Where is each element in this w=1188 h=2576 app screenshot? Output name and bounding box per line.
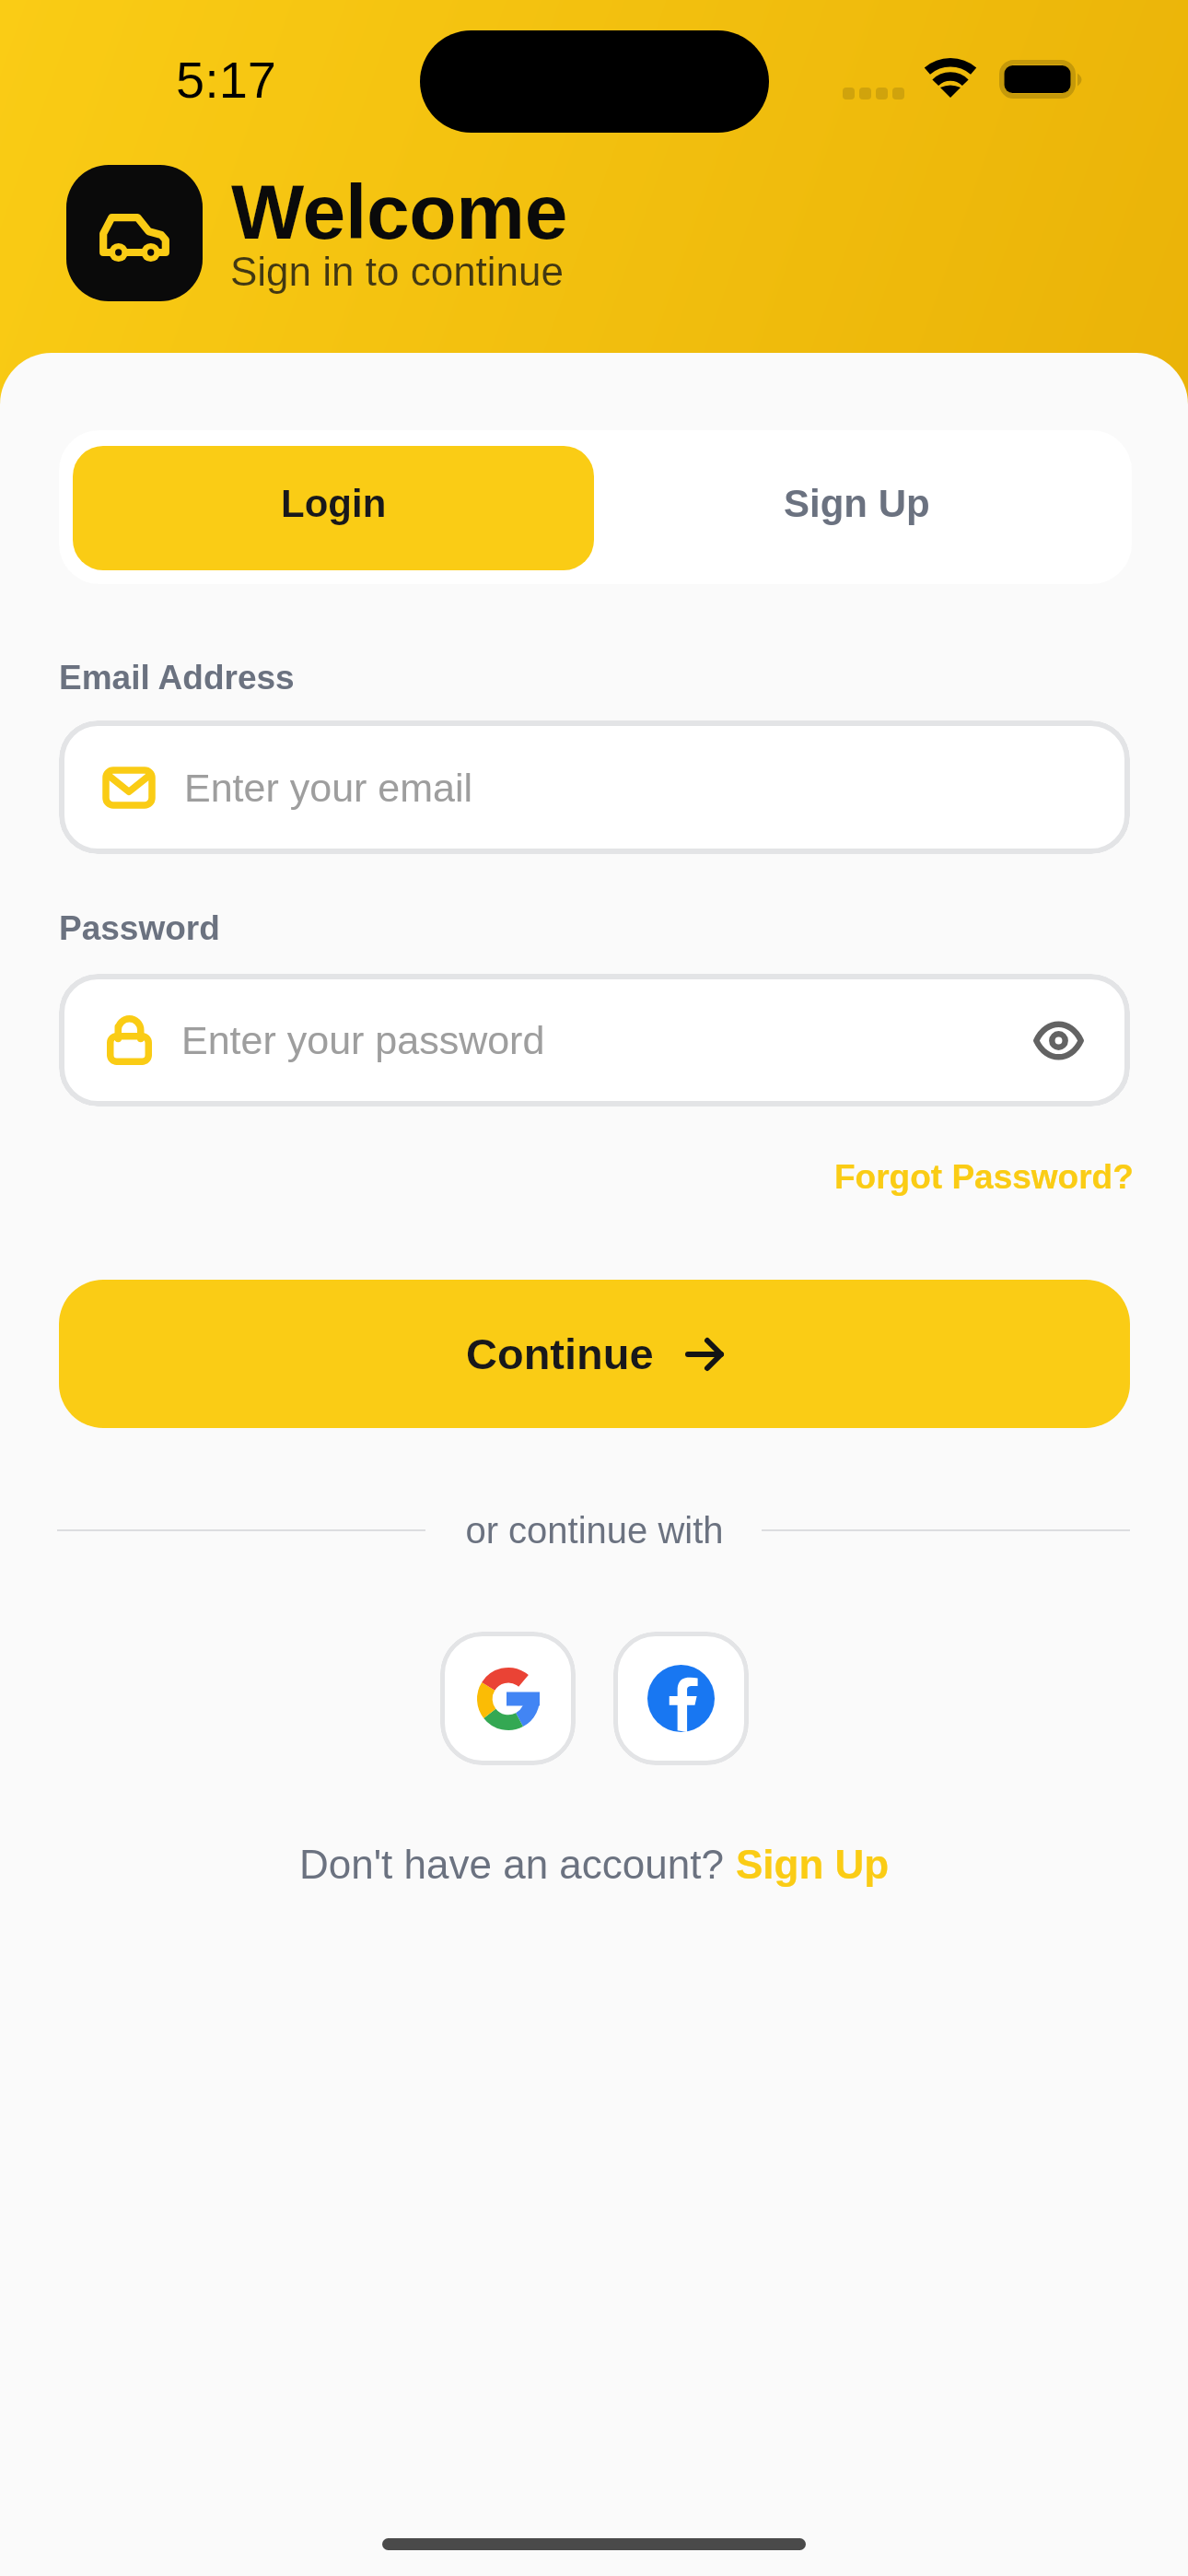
staticText: 5:17: [176, 51, 276, 109]
button[interactable]: Sign Up: [596, 446, 1117, 570]
staticText: Welcome: [231, 169, 568, 255]
button[interactable]: Show password: [1029, 1011, 1088, 1070]
button[interactable]: Forgot Password?: [834, 1158, 1134, 1196]
staticText: or continue with: [465, 1510, 724, 1551]
staticText: Enter your email: [184, 766, 473, 810]
button[interactable]: Continue: [59, 1280, 1130, 1428]
button[interactable]: Enter your password: [59, 974, 1130, 1107]
staticText: Forgot Password?: [834, 1158, 1134, 1196]
button[interactable]: Enter your email: [59, 720, 1130, 854]
button[interactable]: Sign Up: [736, 1842, 890, 1887]
button[interactable]: Sign in with Google: [440, 1632, 576, 1765]
button[interactable]: Login: [73, 446, 594, 570]
button[interactable]: Sign in with Facebook: [613, 1632, 749, 1765]
staticText: Continue: [466, 1329, 654, 1378]
staticText: Password: [59, 909, 220, 947]
staticText: Sign in to continue: [230, 249, 565, 294]
staticText: Enter your password: [181, 1018, 545, 1062]
staticText: Login: [281, 482, 387, 525]
staticText: Email Address: [59, 659, 295, 697]
staticText: Don't have an account?: [299, 1842, 736, 1887]
staticText: Sign Up: [784, 482, 930, 525]
staticText: Sign Up: [736, 1842, 890, 1887]
